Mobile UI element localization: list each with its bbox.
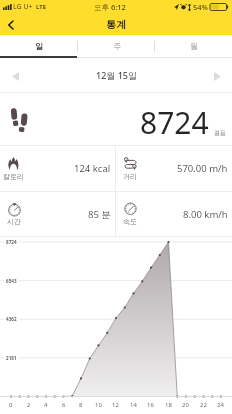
staticText: 4 [44, 401, 48, 409]
staticText: 8724 [140, 102, 209, 143]
staticText: LTE [36, 3, 47, 11]
staticText: 시간 [7, 217, 21, 226]
staticText: 85 분 [88, 208, 111, 221]
staticText: 10 [95, 401, 102, 409]
staticText: 오후 6:12 [94, 2, 126, 12]
button[interactable]: Next day [202, 61, 232, 91]
staticText: 통계 [106, 18, 126, 31]
staticText: 18 [165, 401, 172, 409]
staticText: 8724 [6, 239, 17, 245]
staticText: 월 [190, 41, 198, 51]
staticText: 속도 [123, 217, 137, 226]
staticText: LG U+ [13, 2, 33, 12]
staticText: 0 [9, 401, 13, 409]
staticText: 일 [35, 41, 43, 51]
staticText: 6543 [6, 278, 17, 284]
button[interactable]: 일 [0, 35, 78, 58]
button[interactable]: 속도 [116, 192, 232, 236]
staticText: 14 [130, 401, 137, 409]
button[interactable]: 거리 [116, 146, 232, 191]
staticText: 20 [182, 401, 189, 409]
button[interactable]: 월 [155, 35, 232, 58]
staticText: 2 [27, 401, 31, 409]
staticText: 걸음 [214, 129, 226, 137]
button[interactable]: Previous day [0, 61, 30, 91]
button[interactable]: 칼로리 [0, 146, 115, 191]
staticText: 12월 15일 [96, 69, 137, 81]
button[interactable]: 시간 [0, 192, 115, 236]
staticText: 4362 [6, 316, 17, 322]
staticText: 570.00 m/h [177, 162, 228, 175]
staticText: 8 [79, 401, 83, 409]
staticText: 24 [217, 401, 224, 409]
button[interactable]: 주 [78, 35, 155, 58]
staticText: 124 kcal [74, 162, 111, 175]
staticText: 16 [147, 401, 154, 409]
staticText: 6 [62, 401, 66, 409]
staticText: 2181 [6, 355, 17, 361]
staticText: 54% [193, 2, 208, 12]
staticText: 거리 [123, 172, 137, 181]
staticText: 칼로리 [3, 172, 24, 181]
staticText: 주 [113, 41, 121, 51]
staticText: 8.00 km/h [183, 208, 228, 221]
staticText: 22 [200, 401, 207, 409]
staticText: 12 [112, 401, 119, 409]
button[interactable]: Back [0, 14, 21, 35]
